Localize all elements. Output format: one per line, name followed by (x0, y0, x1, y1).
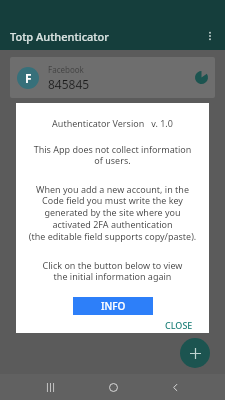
button[interactable]: Add account (180, 338, 210, 368)
staticText: Authenticator Version v. 1.0 (24, 117, 201, 129)
button[interactable]: INFO (73, 297, 153, 315)
staticText: F (25, 70, 32, 86)
staticText: Facebook (48, 64, 84, 75)
staticText: This App does not collect information of… (24, 143, 201, 167)
button[interactable]: More options (199, 25, 221, 47)
staticText: 845845 (48, 76, 90, 92)
button[interactable]: Home (100, 374, 126, 400)
button[interactable]: Recents (37, 374, 63, 400)
staticText: Totp Authenticator (10, 29, 109, 44)
button[interactable]: CLOSE (157, 315, 201, 333)
staticText: CLOSE (165, 319, 193, 329)
staticText: When you add a new account, in the Code … (24, 183, 201, 243)
button[interactable]: F (10, 57, 215, 98)
staticText: INFO (101, 299, 126, 313)
button[interactable]: Back (162, 374, 188, 400)
staticText: Click on the button below to view the in… (24, 259, 201, 283)
